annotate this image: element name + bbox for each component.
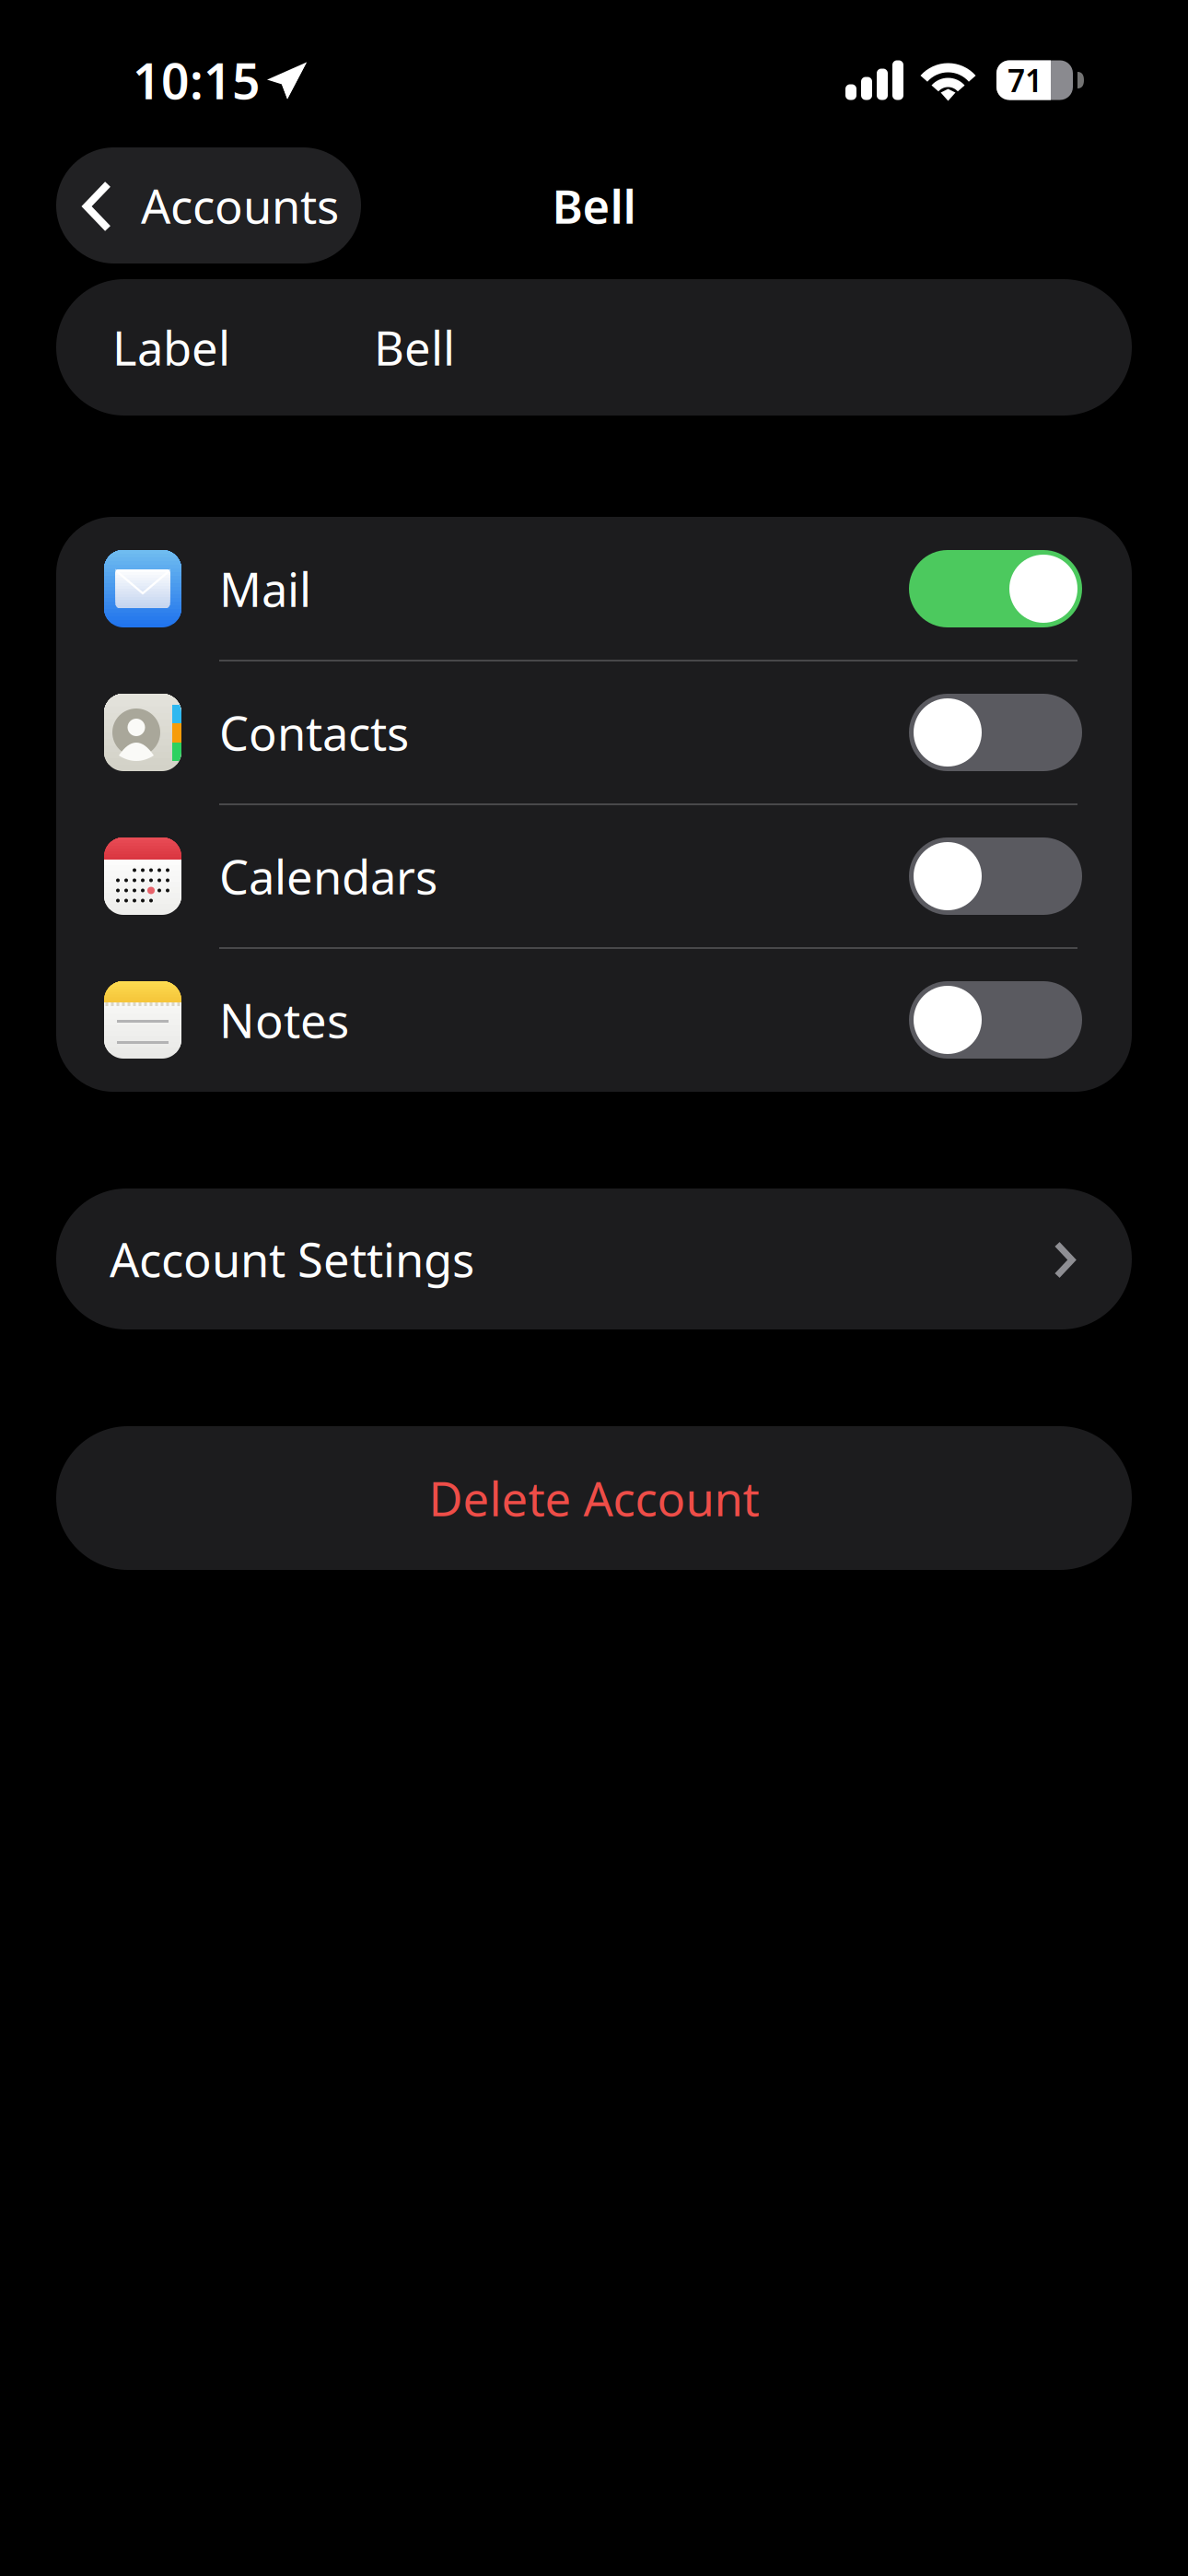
button[interactable]: Notes xyxy=(56,948,1132,1092)
button[interactable]: Calendars xyxy=(56,804,1132,948)
button[interactable]: Account Settings xyxy=(56,1188,1132,1329)
staticText: Notes xyxy=(219,988,349,1052)
staticText: Bell xyxy=(374,316,455,379)
staticText: Delete Account xyxy=(429,1466,759,1530)
staticText: Accounts xyxy=(141,174,339,237)
staticText: 71 xyxy=(1007,59,1042,101)
staticText: 10:15 xyxy=(133,47,261,114)
button[interactable]: Accounts xyxy=(56,147,361,263)
staticText: Contacts xyxy=(219,701,409,764)
staticText: Mail xyxy=(219,557,311,621)
button[interactable]: Contacts xyxy=(56,661,1132,804)
staticText: Account Settings xyxy=(110,1227,474,1291)
button[interactable]: Delete Account xyxy=(56,1426,1132,1570)
staticText: Label xyxy=(112,316,230,379)
button[interactable]: Mail xyxy=(56,517,1132,661)
staticText: Bell xyxy=(552,174,636,237)
staticText: Calendars xyxy=(219,844,437,908)
